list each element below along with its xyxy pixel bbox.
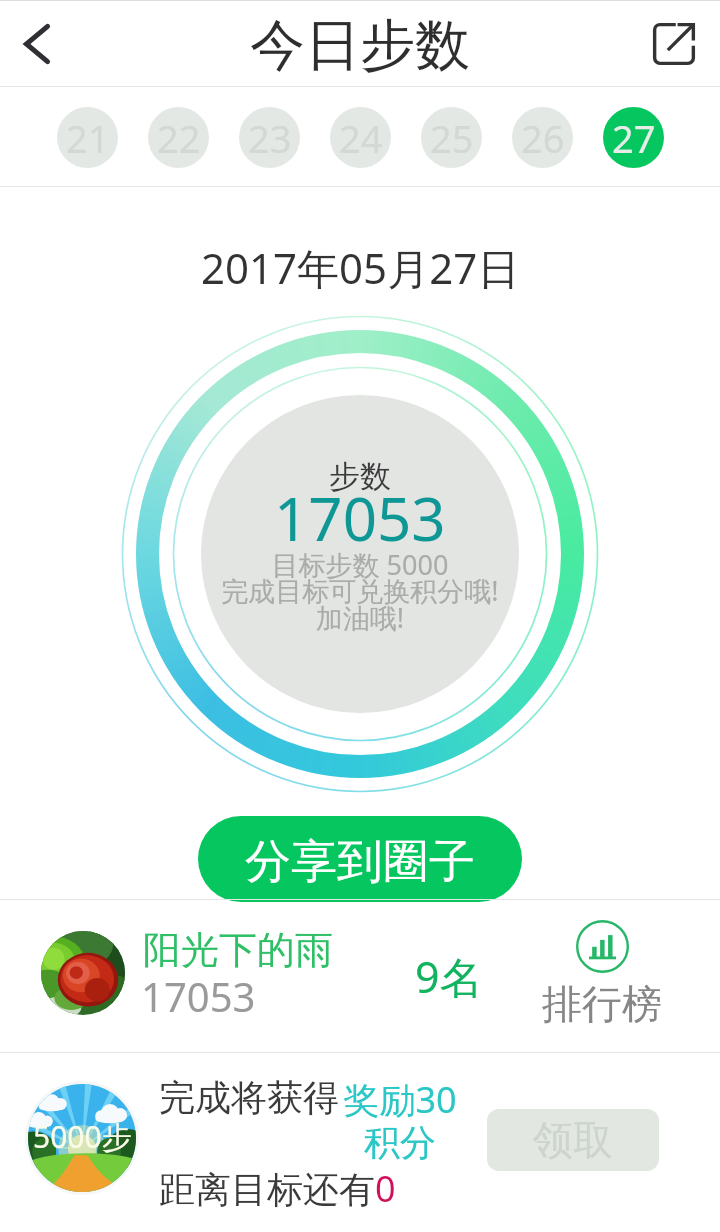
button[interactable]: Back bbox=[0, 0, 80, 87]
staticText: 距离目标还有0 bbox=[159, 1164, 396, 1213]
button[interactable]: 排行榜 bbox=[540, 917, 664, 1029]
staticText: 阳光下的雨 bbox=[143, 926, 333, 974]
staticText: 17053 bbox=[274, 477, 446, 559]
staticText: 分享到圈子 bbox=[245, 833, 475, 891]
staticText: 23 bbox=[248, 112, 292, 164]
staticText: 24 bbox=[339, 112, 383, 164]
staticText: 26 bbox=[521, 112, 565, 164]
staticText: 排行榜 bbox=[542, 979, 662, 1029]
staticText: 17053 bbox=[141, 969, 256, 1023]
button[interactable]: 领取 bbox=[487, 1109, 659, 1171]
button[interactable]: Share bbox=[628, 0, 720, 87]
button[interactable]: 22 bbox=[133, 87, 224, 187]
staticText: 领取 bbox=[533, 1115, 613, 1165]
staticText: 21 bbox=[66, 112, 110, 164]
button[interactable]: 阳光下的雨 bbox=[0, 900, 720, 1052]
staticText: 目标步数 5000 完成目标可兑换积分哦! 加油哦! bbox=[221, 546, 499, 636]
button[interactable]: 分享到圈子 bbox=[198, 816, 522, 902]
staticText: 2017年05月27日 bbox=[201, 239, 520, 296]
staticText: 今日步数 bbox=[250, 11, 470, 80]
staticText: 25 bbox=[430, 112, 474, 164]
staticText: 5000步 bbox=[33, 1116, 132, 1157]
staticText: 奖励30积分 bbox=[339, 1075, 461, 1166]
button[interactable]: 25 bbox=[406, 87, 497, 187]
staticText: 22 bbox=[157, 112, 201, 164]
button[interactable]: 26 bbox=[497, 87, 588, 187]
button[interactable]: 21 bbox=[42, 87, 133, 187]
staticText: 9名 bbox=[415, 947, 483, 1006]
staticText: 27 bbox=[612, 112, 656, 164]
staticText: 步数 bbox=[329, 457, 391, 496]
staticText: 完成将获得 bbox=[159, 1075, 339, 1120]
button[interactable]: 27 bbox=[588, 87, 679, 187]
button[interactable]: 23 bbox=[224, 87, 315, 187]
button[interactable]: 24 bbox=[315, 87, 406, 187]
